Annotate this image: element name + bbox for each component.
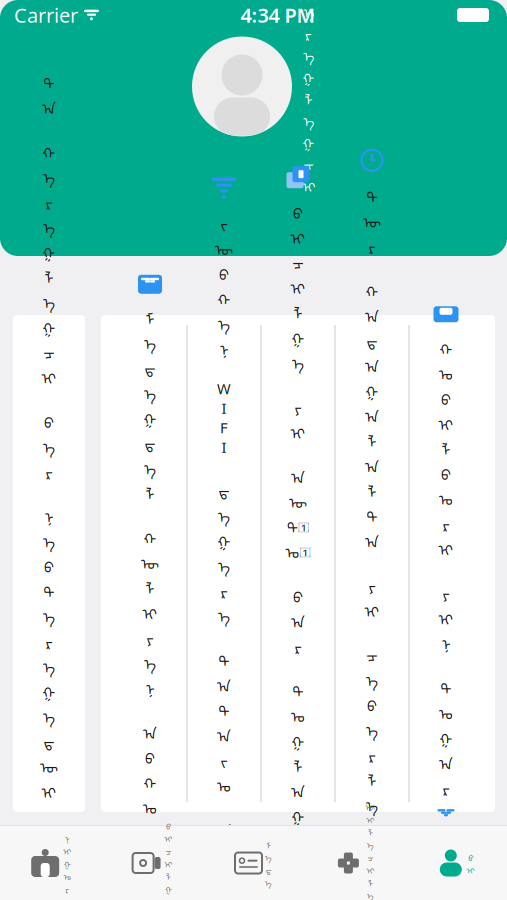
staticText: ᠨ [441, 629, 450, 654]
button[interactable]: Profile [406, 826, 507, 900]
button[interactable]: ᠲ [13, 315, 85, 812]
staticText: ᠯ [145, 573, 154, 598]
staticText: ᠳ [144, 354, 155, 379]
staticText: ᠪ [44, 822, 54, 847]
staticText: ᠳ [366, 326, 377, 351]
staticText: ᠪ [44, 552, 54, 577]
button[interactable]: Services [304, 826, 406, 900]
staticText: ᠤ [217, 771, 231, 796]
staticText: ᠨ [65, 831, 70, 845]
staticText: ᠶ [294, 393, 301, 418]
button[interactable]: News [203, 826, 304, 900]
staticText: ᠶ [368, 571, 375, 596]
staticText: ᠦ [215, 234, 233, 259]
staticText: ᠵ [220, 746, 227, 771]
button[interactable]: Home [0, 826, 101, 900]
staticText: Carrier [14, 2, 78, 28]
staticText: ᠢ [165, 856, 173, 870]
staticText [47, 802, 51, 822]
staticText: ᠤ [439, 699, 453, 724]
staticText: ᠷ [65, 881, 69, 895]
staticText: ᠵ [220, 209, 227, 234]
staticText: ᠢ [467, 862, 475, 876]
staticText: ᠤ [439, 484, 453, 509]
staticText: ᠯ [304, 86, 312, 109]
staticText: ᠪ [367, 691, 377, 716]
staticText: ᠷ [442, 509, 449, 534]
staticText: ᠭ [42, 677, 55, 702]
staticText: ᠪ [441, 384, 451, 409]
staticText: ᠡ [303, 0, 314, 22]
staticText: ᠡ [144, 379, 156, 404]
staticText: ᠪ [166, 818, 171, 832]
staticText [222, 626, 226, 646]
staticText: ᠡ [303, 108, 314, 130]
staticText: ᠡ [144, 649, 156, 674]
staticText: ᠠ [365, 401, 379, 426]
staticText: ᠯ [367, 426, 376, 451]
staticText: ᠬ [439, 334, 452, 359]
staticText: ᠢ [41, 872, 56, 897]
staticText: ᠡ [218, 501, 230, 526]
staticText: ᠭ [165, 881, 172, 895]
staticText: ᠦ [365, 799, 375, 813]
staticText: ᠭ [64, 856, 71, 870]
staticText: ᠡ [43, 652, 55, 677]
staticText: ᠠ [42, 847, 56, 872]
staticText: ᠢ [438, 409, 453, 434]
staticText: ᠡ [43, 602, 55, 627]
staticText: ᠲ [366, 182, 377, 207]
staticText: ᠯ [166, 869, 171, 882]
staticText: ᠴ [366, 641, 377, 666]
staticText: ᠦ [363, 841, 381, 866]
staticText: ᠭ [143, 404, 156, 429]
staticText: ᠢ [290, 223, 305, 248]
staticText: ᠴ [166, 843, 172, 857]
staticText: ᠯ [44, 263, 53, 288]
staticText: ᠷ [305, 21, 312, 43]
staticText: ᠴ [303, 151, 313, 174]
staticText: ᠡ [43, 163, 55, 188]
staticText: ᠢ [366, 812, 374, 826]
button[interactable]: Video [101, 826, 203, 900]
staticText: ᠡ [303, 42, 314, 65]
button[interactable]: ᠬ [409, 315, 482, 812]
staticText: ᠬ [143, 523, 156, 548]
staticText: I [221, 398, 226, 418]
staticText: ᠨ [219, 334, 228, 359]
staticText: ᠳ [218, 476, 229, 501]
staticText: ᠭ [291, 323, 304, 348]
staticText: ᠡ [165, 894, 172, 900]
staticText: ᠡ [292, 348, 304, 373]
button[interactable]: ᠲ [335, 315, 408, 812]
staticText: ᠳ [144, 429, 155, 454]
staticText: ᠦ [40, 752, 58, 777]
button[interactable]: ᠪ [261, 315, 334, 812]
staticText: F [220, 418, 228, 437]
button[interactable]: ᠵ [187, 315, 260, 812]
staticText: ᠦ [363, 207, 381, 232]
staticText: ᠶ [442, 579, 449, 604]
staticText: ᠢ [41, 777, 56, 802]
button[interactable]: ᠮ [113, 315, 186, 812]
staticText: ᠯ [441, 434, 450, 459]
staticText: ᠠ [291, 777, 305, 802]
staticText: ᠲ [43, 577, 54, 602]
staticText [296, 373, 300, 393]
staticText: ᠳ᠋ [440, 674, 451, 699]
staticText: ᠡ [367, 837, 374, 851]
staticText: ᠯ [367, 477, 376, 502]
staticText: ᠬ [42, 138, 55, 163]
button[interactable]: Profile photo [192, 36, 292, 136]
